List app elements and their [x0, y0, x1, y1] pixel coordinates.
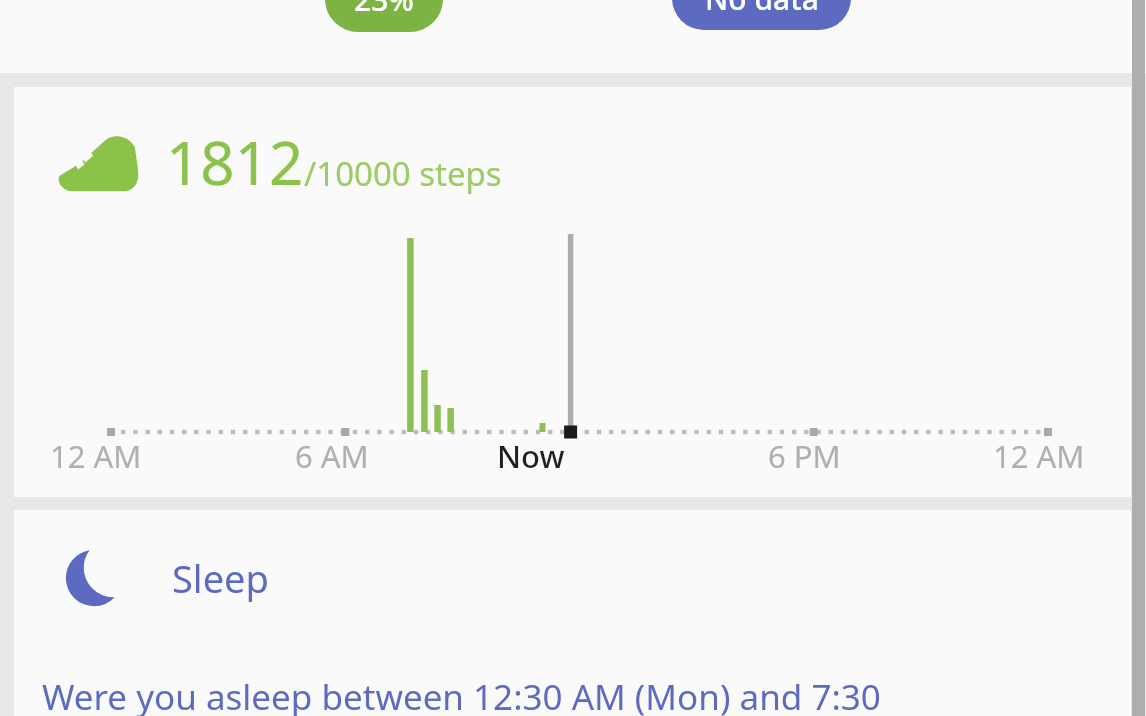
staticText: Sleep	[172, 552, 269, 604]
staticText: No data	[705, 0, 819, 19]
button[interactable]: Steps	[14, 87, 1131, 497]
staticText: Were you asleep between 12:30 AM (Mon) a…	[42, 673, 1146, 716]
staticText: 12 AM	[50, 435, 142, 477]
staticText: 6 AM	[295, 435, 369, 477]
other: Sleep	[62, 546, 126, 610]
staticText: 1812	[166, 121, 304, 203]
staticText: Now	[497, 435, 565, 477]
staticText: /10000 steps	[304, 151, 502, 196]
staticText: 12 AM	[993, 435, 1085, 477]
other: Steps	[58, 131, 138, 193]
button[interactable]: 23%	[325, 0, 443, 32]
staticText: 23%	[354, 0, 414, 20]
button[interactable]: Sleep	[14, 510, 1131, 716]
button[interactable]: No data	[672, 0, 851, 30]
staticText: 6 PM	[768, 435, 841, 477]
